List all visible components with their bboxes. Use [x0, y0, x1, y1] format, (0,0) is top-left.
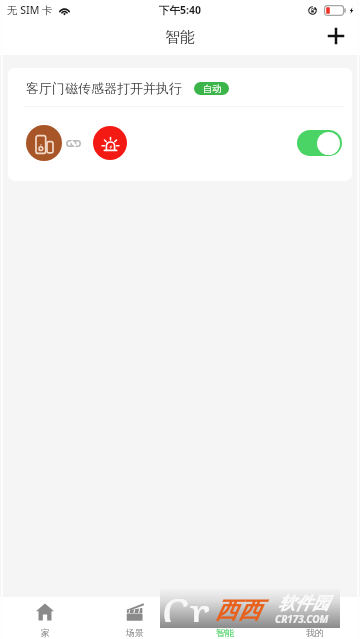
staticText: CR173.COM — [275, 612, 329, 626]
staticText: 软件园 — [278, 593, 329, 614]
button[interactable]: 场景 — [90, 597, 180, 639]
staticText: 自动 — [203, 83, 221, 94]
button[interactable]: 智能 — [180, 597, 270, 639]
button[interactable]: 我的 — [270, 597, 360, 639]
staticText: 家 — [41, 627, 50, 638]
staticText: 场景 — [126, 627, 144, 638]
staticText: 智能 — [165, 28, 195, 47]
button[interactable]: 家 — [0, 597, 90, 639]
staticText: 无 SIM 卡 — [7, 3, 53, 17]
staticText: 智能 — [216, 627, 234, 638]
button[interactable]: Add automation — [322, 22, 350, 50]
staticText: Cr — [162, 583, 210, 622]
button[interactable]: Toggle automation — [297, 130, 342, 156]
staticText: 西西 — [215, 596, 261, 625]
staticText: 我的 — [306, 627, 324, 638]
button[interactable]: 客厅门磁传感器打开并执行 — [8, 68, 352, 181]
staticText: 下午5:40 — [159, 3, 201, 17]
staticText: 客厅门磁传感器打开并执行 — [26, 80, 182, 96]
